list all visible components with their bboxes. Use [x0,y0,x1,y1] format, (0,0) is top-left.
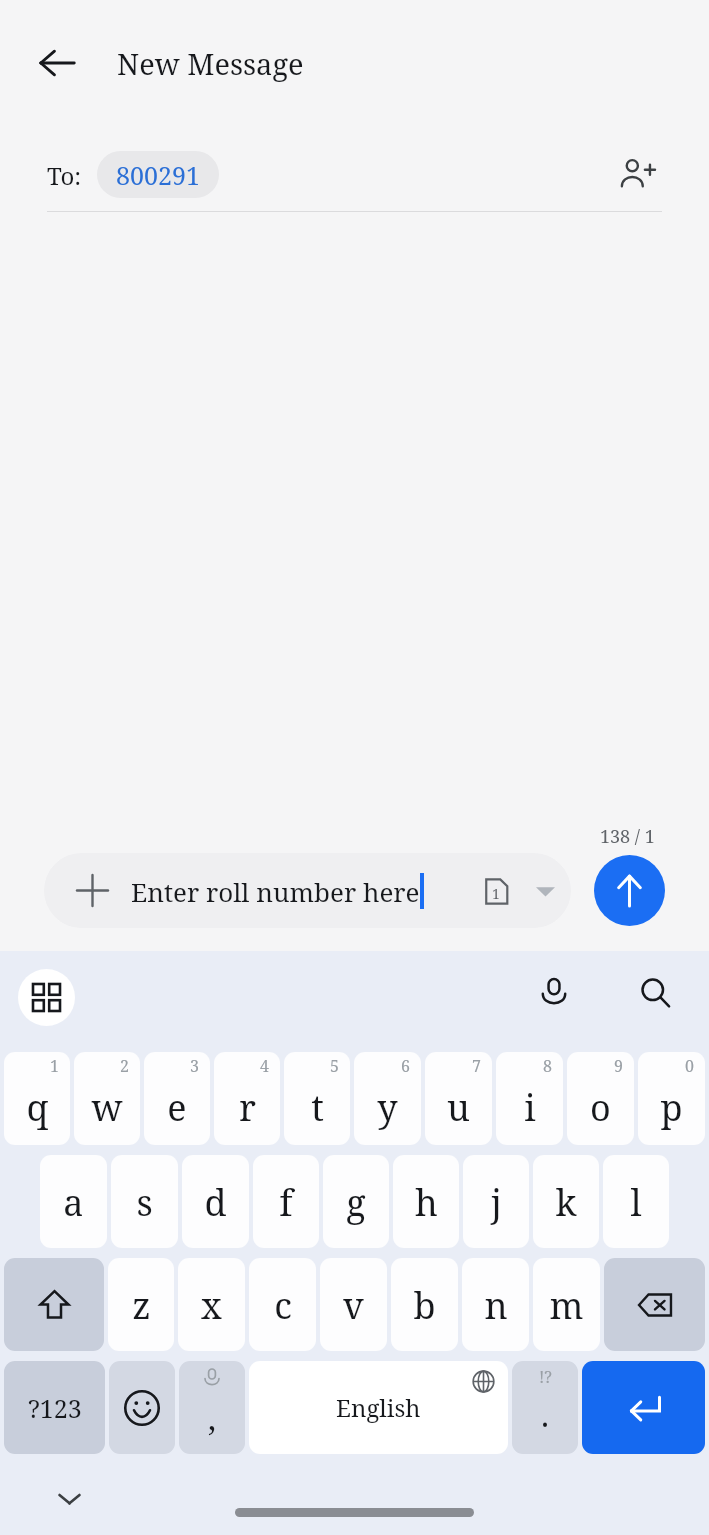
button[interactable]: Shift [4,1258,104,1351]
staticText: q [26,1083,49,1132]
button[interactable]: 7 [425,1052,492,1145]
button[interactable]: !? [512,1361,578,1454]
button[interactable]: 6 [354,1052,421,1145]
staticText: x [201,1281,222,1330]
staticText: u [447,1083,470,1132]
staticText: c [274,1281,292,1330]
button[interactable]: 0 [638,1052,705,1145]
staticText: n [484,1281,508,1330]
staticText: 3 [190,1055,199,1077]
staticText: h [415,1178,438,1227]
staticText: s [136,1178,153,1227]
staticText: r [239,1083,256,1132]
staticText: 5 [330,1055,339,1077]
staticText: p [660,1083,683,1132]
button[interactable]: Add contact [606,143,668,205]
button[interactable]: v [320,1258,387,1351]
button[interactable]: x [178,1258,245,1351]
staticText: i [524,1083,536,1132]
staticText: z [132,1281,151,1330]
button[interactable]: Enter [582,1361,705,1454]
staticText: k [555,1178,577,1227]
button[interactable]: Search [626,964,684,1022]
staticText: o [590,1083,611,1132]
staticText: To: [47,159,82,192]
staticText: e [167,1083,187,1132]
staticText: English [336,1391,421,1424]
button[interactable]: English [249,1361,508,1454]
button[interactable]: Backspace [604,1258,705,1351]
button[interactable]: 800291 [97,151,219,198]
button[interactable]: 3 [144,1052,210,1145]
staticText: ?123 [28,1391,82,1425]
staticText: a [63,1178,84,1227]
staticText: w [91,1083,123,1132]
button[interactable]: Enter roll number here [44,853,571,928]
staticText: , [208,1396,217,1440]
button[interactable]: Emoji [109,1361,175,1454]
staticText: b [413,1281,436,1330]
staticText: 138 / 1 [600,824,655,849]
button[interactable]: j [463,1155,529,1248]
button[interactable]: 9 [567,1052,634,1145]
button[interactable]: f [253,1155,319,1248]
button[interactable]: h [393,1155,459,1248]
staticText: v [343,1281,364,1330]
staticText: t [311,1083,324,1132]
button[interactable]: Hide keyboard [42,1471,97,1526]
staticText: 7 [472,1055,481,1077]
staticText: g [346,1178,366,1227]
button[interactable]: 2 [74,1052,140,1145]
button[interactable]: a [40,1155,107,1248]
staticText: 0 [685,1055,694,1077]
button[interactable]: 4 [214,1052,280,1145]
button[interactable]: d [182,1155,249,1248]
button[interactable]: , [179,1361,245,1454]
button[interactable]: 1 [4,1052,70,1145]
button[interactable]: Back [26,32,88,94]
button[interactable]: Choose SIM [527,873,563,909]
staticText: 2 [120,1055,129,1077]
button[interactable]: 5 [284,1052,350,1145]
staticText: m [549,1281,584,1330]
button[interactable]: l [603,1155,669,1248]
button[interactable]: s [111,1155,178,1248]
button[interactable]: m [533,1258,600,1351]
button[interactable]: 8 [496,1052,563,1145]
staticText: j [491,1178,502,1227]
button[interactable]: c [249,1258,316,1351]
staticText: 9 [614,1055,623,1077]
staticText: 800291 [116,158,200,192]
staticText: f [279,1178,293,1227]
staticText: Enter roll number here [131,874,420,909]
button[interactable]: g [323,1155,389,1248]
staticText: 8 [543,1055,552,1077]
button[interactable]: n [462,1258,529,1351]
button[interactable]: k [533,1155,599,1248]
staticText: 6 [401,1055,410,1077]
button[interactable]: b [391,1258,458,1351]
staticText: !? [539,1366,552,1388]
button[interactable]: Voice input [525,964,583,1022]
button[interactable]: ?123 [4,1361,105,1454]
staticText: 1 [50,1055,59,1077]
staticText: y [377,1083,398,1132]
staticText: New Message [117,44,304,83]
button[interactable]: SIM 1 [473,868,519,914]
staticText: . [541,1393,550,1437]
button[interactable]: Send [594,855,665,926]
staticText: 4 [260,1055,269,1077]
staticText: l [630,1178,642,1227]
staticText: d [204,1178,227,1227]
button[interactable]: Keyboard menu [18,969,75,1026]
staticText: 1 [492,884,500,903]
button[interactable]: z [108,1258,174,1351]
